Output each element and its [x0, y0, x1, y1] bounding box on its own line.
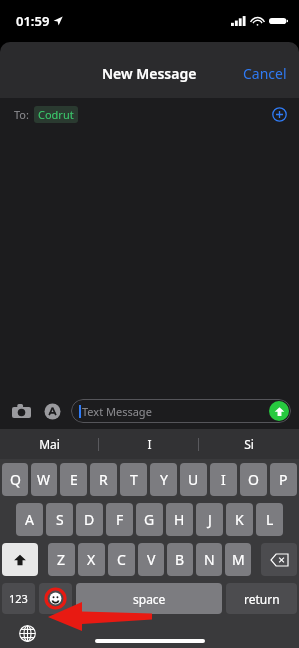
- button[interactable]: Delete: [261, 543, 297, 576]
- button[interactable]: Add contact: [267, 102, 291, 126]
- staticText: T: [130, 470, 138, 489]
- staticText: Q: [10, 470, 21, 489]
- button[interactable]: Camera: [8, 398, 34, 424]
- staticText: To:: [14, 107, 29, 122]
- button[interactable]: B: [167, 543, 193, 576]
- staticText: V: [147, 550, 156, 569]
- button[interactable]: Text Message: [71, 399, 291, 423]
- button[interactable]: 123: [2, 583, 35, 614]
- staticText: Z: [57, 550, 66, 569]
- staticText: Mai: [39, 436, 60, 452]
- button[interactable]: L: [256, 503, 283, 536]
- staticText: J: [208, 510, 212, 529]
- staticText: M: [232, 550, 245, 569]
- button[interactable]: Emoji: [39, 583, 72, 614]
- button[interactable]: M: [225, 543, 251, 576]
- button[interactable]: K: [226, 503, 253, 536]
- staticText: W: [37, 470, 51, 489]
- staticText: I: [221, 470, 226, 489]
- button[interactable]: App Store: [39, 398, 65, 424]
- button[interactable]: I: [99, 429, 199, 459]
- button[interactable]: R: [90, 463, 117, 496]
- staticText: X: [87, 550, 96, 569]
- staticText: I: [147, 436, 152, 452]
- staticText: Cancel: [243, 64, 287, 83]
- button[interactable]: Q: [2, 463, 28, 496]
- button[interactable]: Change keyboard language: [14, 620, 40, 646]
- button[interactable]: Codrut: [34, 106, 78, 123]
- staticText: D: [84, 510, 95, 529]
- button[interactable]: J: [196, 503, 223, 536]
- button[interactable]: Send: [269, 401, 289, 421]
- button[interactable]: Cancel: [231, 58, 299, 89]
- staticText: Si: [244, 436, 254, 452]
- staticText: return: [244, 591, 280, 607]
- button[interactable]: P: [270, 463, 297, 496]
- staticText: 123: [9, 591, 28, 606]
- staticText: R: [99, 470, 108, 489]
- staticText: B: [175, 550, 185, 569]
- staticText: Y: [160, 470, 168, 489]
- button[interactable]: F: [106, 503, 133, 536]
- button[interactable]: O: [240, 463, 267, 496]
- staticText: A: [25, 510, 34, 529]
- button[interactable]: U: [180, 463, 207, 496]
- button[interactable]: X: [78, 543, 105, 576]
- button[interactable]: I: [210, 463, 237, 496]
- staticText: Text Message: [82, 404, 152, 419]
- staticText: O: [248, 470, 259, 489]
- staticText: space: [133, 591, 166, 607]
- staticText: C: [117, 550, 126, 569]
- button[interactable]: D: [76, 503, 103, 536]
- button[interactable]: V: [138, 543, 164, 576]
- button[interactable]: Mai: [0, 429, 99, 459]
- staticText: New Message: [102, 64, 197, 83]
- staticText: E: [70, 470, 78, 489]
- button[interactable]: Y: [150, 463, 177, 496]
- staticText: K: [235, 510, 244, 529]
- button[interactable]: T: [120, 463, 147, 496]
- button[interactable]: return: [226, 583, 297, 614]
- button[interactable]: Z: [48, 543, 75, 576]
- staticText: G: [144, 510, 155, 529]
- button[interactable]: E: [60, 463, 87, 496]
- button[interactable]: Si: [199, 429, 299, 459]
- staticText: U: [188, 470, 199, 489]
- button[interactable]: N: [196, 543, 222, 576]
- button[interactable]: C: [108, 543, 135, 576]
- button[interactable]: space: [76, 583, 222, 614]
- button[interactable]: W: [31, 463, 57, 496]
- staticText: L: [266, 510, 274, 529]
- staticText: 01:59: [16, 12, 50, 30]
- button[interactable]: G: [136, 503, 163, 536]
- staticText: H: [174, 510, 185, 529]
- button[interactable]: S: [46, 503, 73, 536]
- staticText: Codrut: [38, 107, 74, 122]
- staticText: P: [279, 470, 288, 489]
- button[interactable]: A: [16, 503, 43, 536]
- button[interactable]: Shift: [2, 543, 38, 576]
- button[interactable]: H: [166, 503, 193, 536]
- staticText: S: [56, 510, 64, 529]
- staticText: N: [204, 550, 215, 569]
- staticText: F: [116, 510, 124, 529]
